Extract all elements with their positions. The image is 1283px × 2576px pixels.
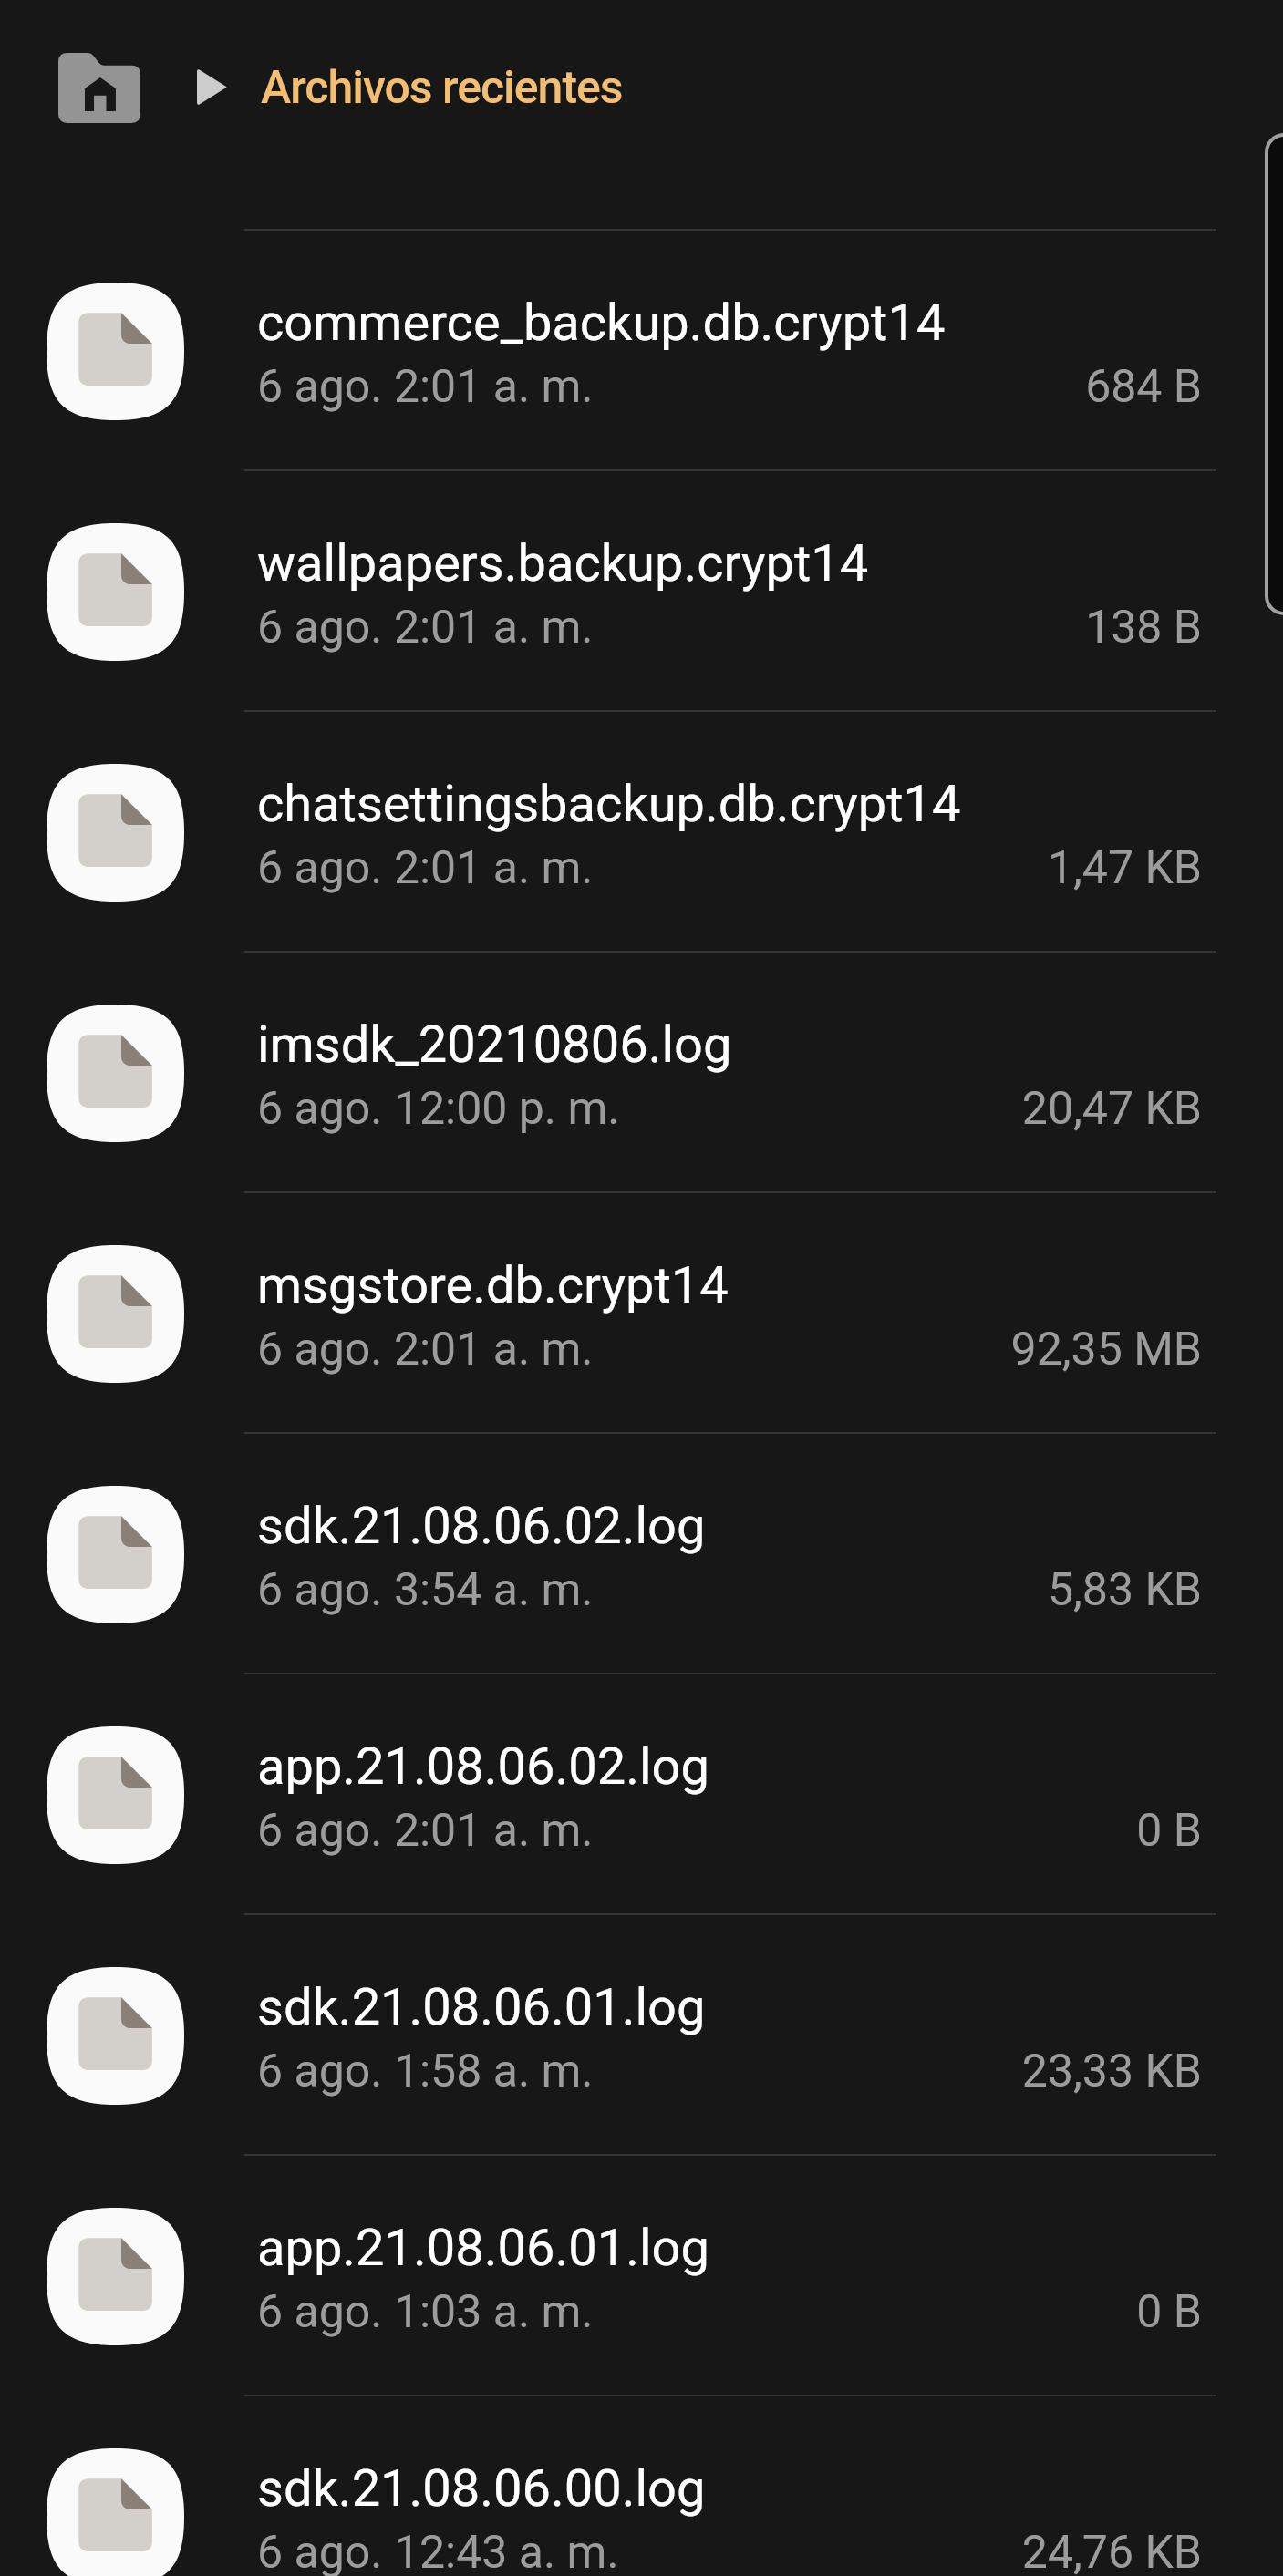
staticText: 0 B <box>257 1804 1202 1858</box>
staticText: 684 B <box>257 360 1202 414</box>
staticText: 6 ago. 2:01 a. m. <box>257 1804 594 1858</box>
staticText: 1,47 KB <box>257 841 1202 895</box>
staticText: chatsettingsbackup.db.crypt14 <box>257 774 1202 834</box>
button[interactable]: sdk.21.08.06.01.log <box>0 1916 1283 2155</box>
staticText: 0 B <box>257 2285 1202 2339</box>
staticText: 6 ago. 12:43 a. m. <box>257 2526 619 2576</box>
staticText: app.21.08.06.01.log <box>257 2218 1202 2278</box>
staticText: 6 ago. 2:01 a. m. <box>257 360 594 414</box>
staticText: commerce_backup.db.crypt14 <box>257 293 1202 353</box>
staticText: 6 ago. 1:58 a. m. <box>257 2045 594 2098</box>
button[interactable]: msgstore.db.crypt14 <box>0 1194 1283 1433</box>
staticText: sdk.21.08.06.01.log <box>257 1977 1202 2037</box>
staticText: 6 ago. 3:54 a. m. <box>257 1563 594 1617</box>
button[interactable]: Archivos recientes <box>261 61 623 118</box>
staticText: 6 ago. 12:00 p. m. <box>257 1082 620 1136</box>
button[interactable]: chatsettingsbackup.db.crypt14 <box>0 713 1283 952</box>
staticText: Archivos recientes <box>261 61 623 115</box>
staticText: 23,33 KB <box>257 2045 1202 2098</box>
staticText: 6 ago. 2:01 a. m. <box>257 841 594 895</box>
staticText: 138 B <box>257 601 1202 654</box>
staticText: imsdk_20210806.log <box>257 1015 1202 1075</box>
staticText: 24,76 KB <box>257 2526 1202 2576</box>
button[interactable]: imsdk_20210806.log <box>0 953 1283 1192</box>
staticText: 92,35 MB <box>257 1323 1202 1376</box>
staticText: sdk.21.08.06.00.log <box>257 2458 1202 2519</box>
button[interactable]: Inicio <box>58 53 140 123</box>
staticText: 6 ago. 2:01 a. m. <box>257 1323 594 1376</box>
button[interactable]: sdk.21.08.06.02.log <box>0 1435 1283 1674</box>
staticText: 5,83 KB <box>257 1563 1202 1617</box>
button[interactable]: app.21.08.06.01.log <box>0 2157 1283 2396</box>
button[interactable]: sdk.21.08.06.00.log <box>0 2397 1283 2576</box>
staticText: app.21.08.06.02.log <box>257 1736 1202 1797</box>
staticText: 20,47 KB <box>257 1082 1202 1136</box>
staticText: msgstore.db.crypt14 <box>257 1255 1202 1315</box>
staticText: wallpapers.backup.crypt14 <box>257 533 1202 593</box>
button[interactable]: commerce_backup.db.crypt14 <box>0 232 1283 470</box>
button[interactable]: app.21.08.06.02.log <box>0 1675 1283 1914</box>
button[interactable]: wallpapers.backup.crypt14 <box>0 472 1283 711</box>
staticText: 6 ago. 2:01 a. m. <box>257 601 594 654</box>
staticText: 6 ago. 1:03 a. m. <box>257 2285 594 2339</box>
staticText: sdk.21.08.06.02.log <box>257 1496 1202 1556</box>
